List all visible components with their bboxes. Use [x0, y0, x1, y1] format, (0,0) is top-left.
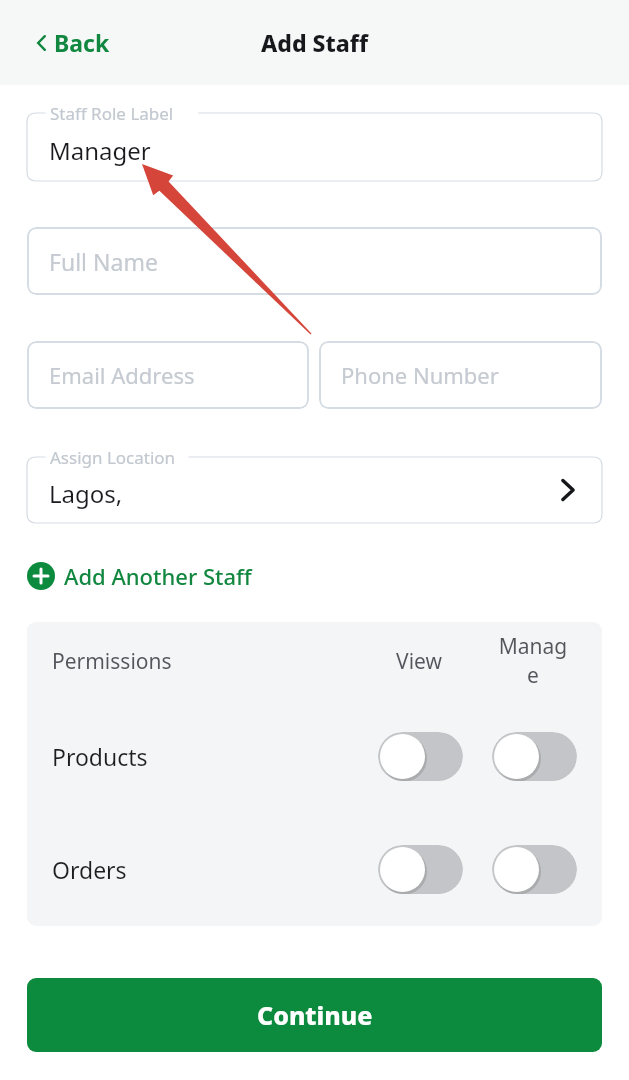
- other: Choose location: [560, 476, 576, 504]
- staticText: Assign Location: [50, 446, 176, 469]
- staticText: Lagos,: [49, 477, 123, 510]
- staticText: Back: [54, 27, 110, 58]
- button[interactable]: Back: [30, 21, 116, 64]
- button[interactable]: Continue: [27, 978, 602, 1052]
- staticText: Continue: [257, 998, 373, 1032]
- button[interactable]: Phone Number: [319, 341, 602, 409]
- button[interactable]: Staff Role Label: [27, 113, 602, 181]
- button[interactable]: Products manage permission toggle: [492, 732, 577, 781]
- staticText: Phone Number: [341, 360, 499, 390]
- button[interactable]: Orders view permission toggle: [378, 845, 463, 894]
- staticText: Manager: [49, 134, 151, 167]
- button[interactable]: Full Name: [27, 227, 602, 295]
- staticText: Products: [52, 741, 148, 772]
- button[interactable]: Products view permission toggle: [378, 732, 463, 781]
- staticText: Full Name: [49, 246, 158, 277]
- staticText: Add Another Staff: [64, 561, 252, 591]
- button[interactable]: Email Address: [27, 341, 309, 409]
- staticText: Manage: [493, 632, 573, 690]
- button[interactable]: Add Another Staff: [27, 557, 260, 595]
- staticText: View: [379, 647, 459, 676]
- staticText: Staff Role Label: [50, 102, 174, 125]
- button[interactable]: Orders manage permission toggle: [492, 845, 577, 894]
- button[interactable]: Assign Location: [27, 457, 602, 523]
- staticText: Email Address: [49, 360, 195, 390]
- staticText: Permissions: [52, 647, 172, 676]
- staticText: Orders: [52, 854, 127, 885]
- staticText: Add Staff: [261, 27, 369, 58]
